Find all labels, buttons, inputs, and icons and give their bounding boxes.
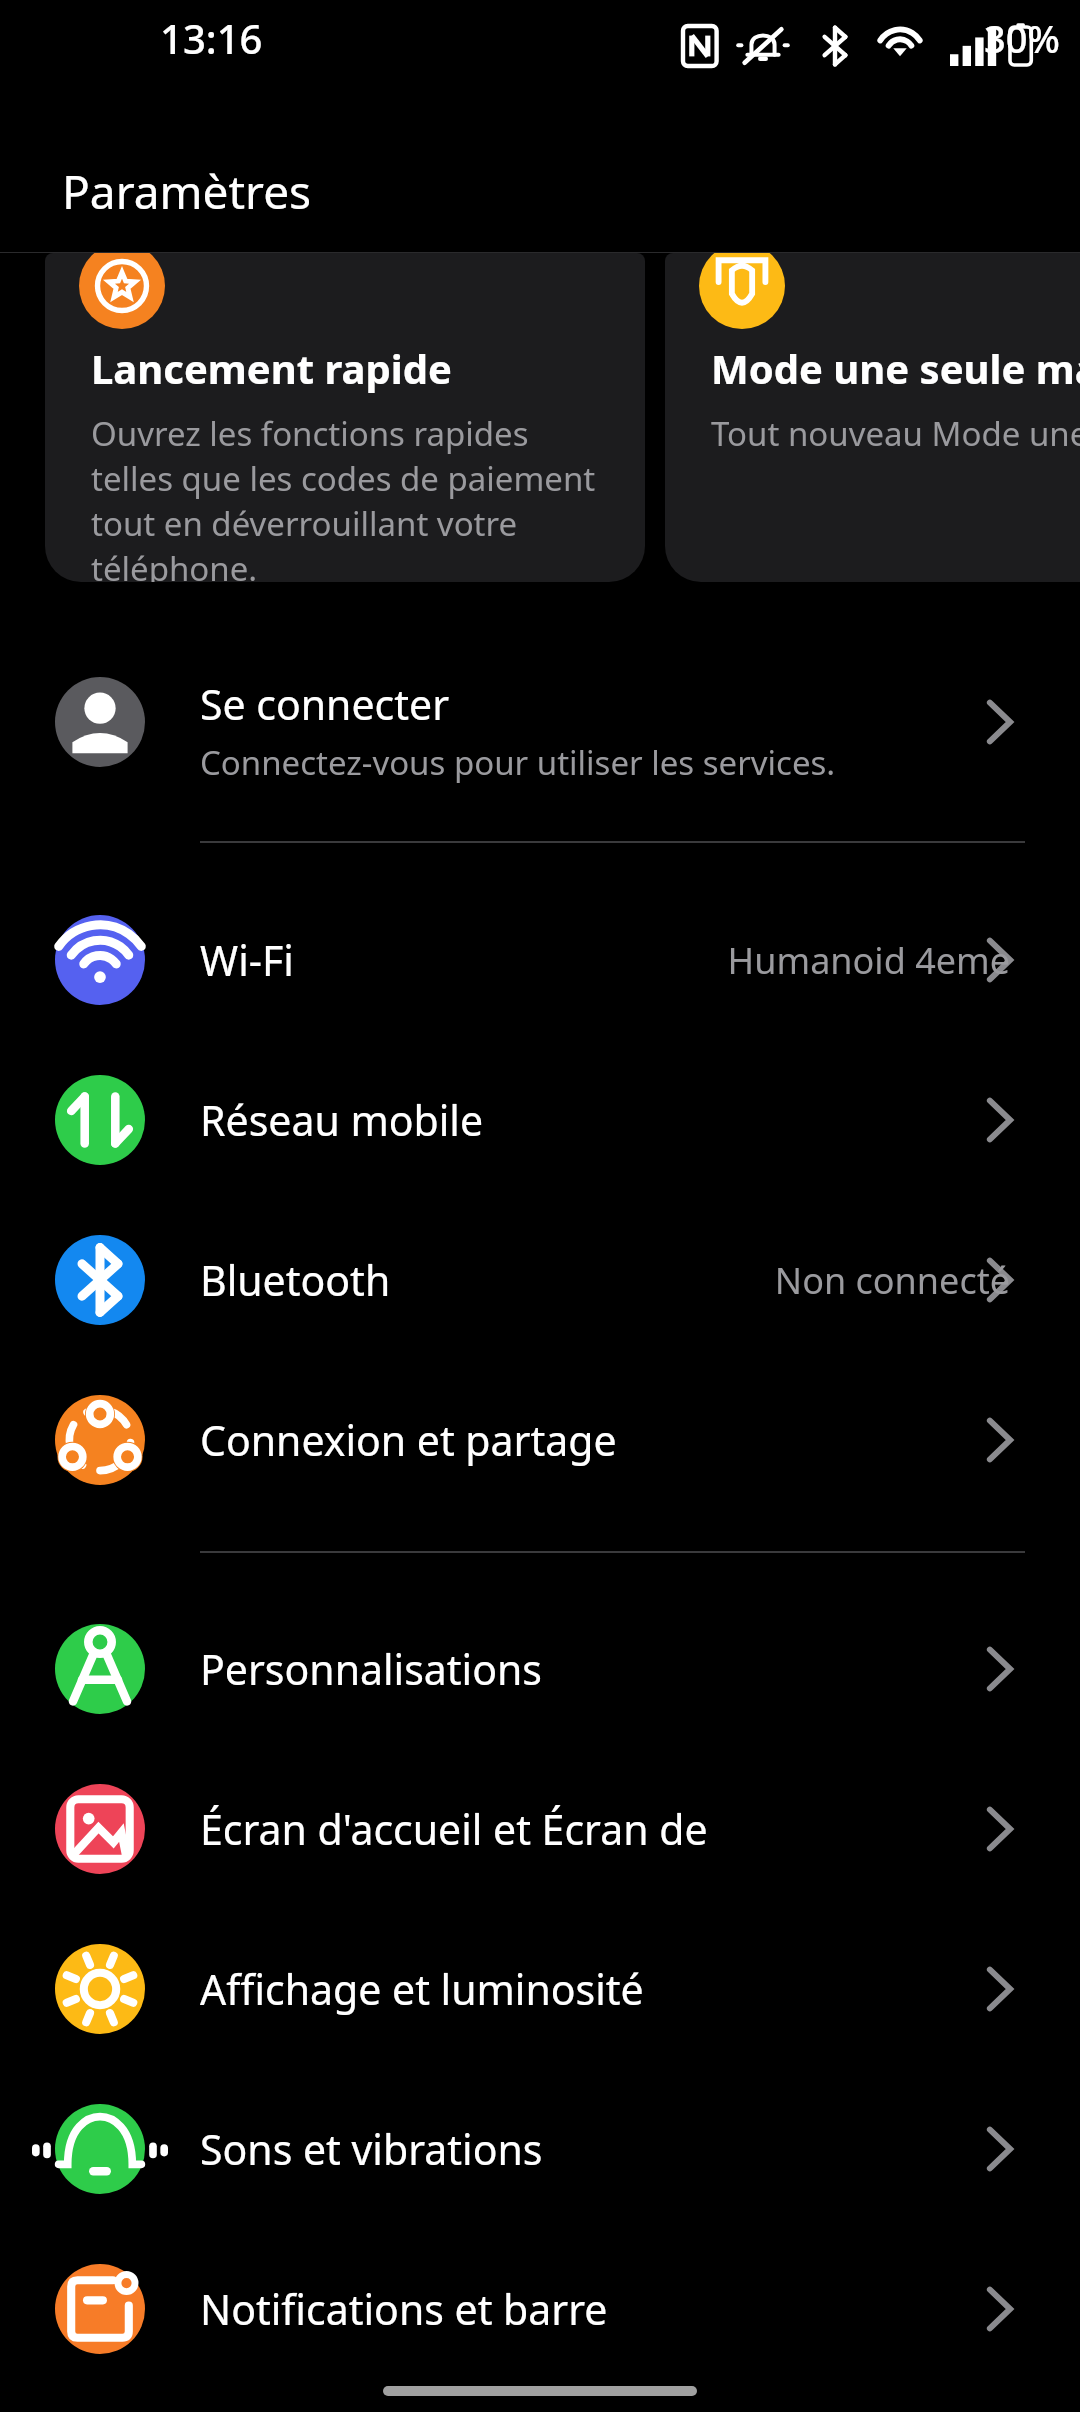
staticText: Wi-Fi bbox=[200, 932, 294, 988]
staticText: Affichage et luminosité bbox=[200, 1961, 644, 2017]
staticText: Réseau mobile bbox=[200, 1092, 484, 1148]
button[interactable]: Lancement rapide bbox=[45, 253, 645, 582]
button[interactable]: Écran d'accueil et Écran de verrouillage bbox=[0, 1749, 1080, 1909]
staticText: Se connecter bbox=[200, 676, 450, 732]
staticText: Personnalisations bbox=[200, 1641, 542, 1697]
button[interactable]: Connexion et partage bbox=[0, 1360, 1080, 1520]
button[interactable]: Notifications et barre d'état bbox=[0, 2229, 1080, 2389]
staticText: Notifications et barre d'état bbox=[200, 2281, 720, 2337]
staticText: Mode une seule main bbox=[711, 341, 1080, 395]
button[interactable]: Wi-Fi bbox=[0, 880, 1080, 1040]
staticText: Bluetooth bbox=[200, 1252, 391, 1308]
staticText: Sons et vibrations bbox=[200, 2121, 543, 2177]
button[interactable]: Mode une seule main bbox=[665, 253, 1080, 582]
staticText: Ouvrez les fonctions rapides telles que … bbox=[91, 411, 611, 582]
staticText: Non connecté bbox=[774, 1256, 1010, 1305]
button[interactable]: Bluetooth bbox=[0, 1200, 1080, 1360]
staticText: Connexion et partage bbox=[200, 1412, 617, 1468]
staticText: Paramètres bbox=[62, 160, 312, 223]
staticText: Humanoid 4eme bbox=[727, 936, 1010, 985]
button[interactable]: Sons et vibrations bbox=[0, 2069, 1080, 2229]
staticText: Tout nouveau Mode une seule main bbox=[711, 411, 1080, 456]
button[interactable]: Affichage et luminosité bbox=[0, 1909, 1080, 2069]
staticText: Lancement rapide bbox=[91, 341, 452, 395]
staticText: 30% bbox=[984, 12, 1060, 64]
staticText: Écran d'accueil et Écran de verrouillage bbox=[200, 1801, 720, 1857]
button[interactable]: Réseau mobile bbox=[0, 1040, 1080, 1200]
staticText: 13:16 bbox=[160, 11, 263, 65]
button[interactable]: Personnalisations bbox=[0, 1589, 1080, 1749]
staticText: Connectez-vous pour utiliser les service… bbox=[200, 740, 836, 785]
button[interactable]: Se connecter bbox=[0, 640, 1080, 805]
